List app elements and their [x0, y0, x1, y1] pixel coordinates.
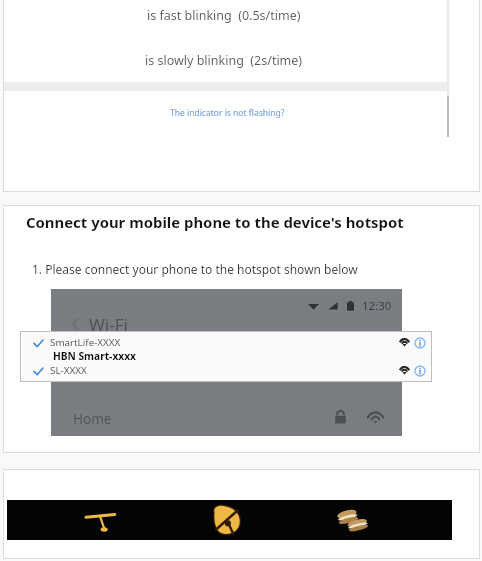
staticText: SmartLife-XXXX	[50, 336, 121, 349]
staticText: HBN Smart-xxxx	[53, 349, 136, 363]
button[interactable]: HBN Smart-xxxx	[20, 349, 432, 364]
staticText: Home	[73, 410, 112, 428]
button[interactable]: Back	[67, 314, 85, 334]
staticText: 12:30	[362, 298, 392, 314]
button[interactable]: Cookies	[331, 500, 375, 540]
staticText: is fast blinking (0.5s/time)	[147, 7, 301, 24]
button[interactable]: SmartLife-XXXX	[20, 336, 432, 351]
staticText: is slowly blinking (2s/time)	[145, 52, 303, 69]
button[interactable]: The indicator is not flashing?	[170, 107, 285, 119]
staticText: SL-XXXX	[50, 364, 87, 377]
button[interactable]	[51, 402, 402, 432]
button[interactable]: Lamp	[78, 500, 122, 540]
button[interactable]: Network info	[414, 337, 426, 349]
staticText: 1. Please connect your phone to the hots…	[32, 261, 358, 277]
button[interactable]: SL-XXXX	[20, 364, 432, 379]
staticText: Wi-Fi	[89, 313, 128, 336]
button[interactable]: Network info	[414, 365, 426, 377]
staticText: Connect your mobile phone to the device'…	[26, 212, 404, 232]
button[interactable]: Mute	[204, 500, 248, 540]
